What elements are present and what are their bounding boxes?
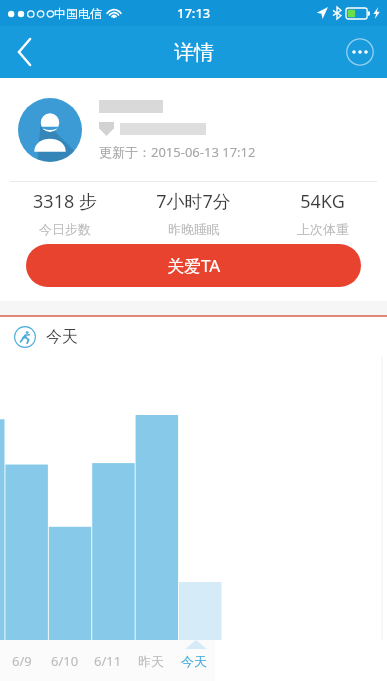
button[interactable]: 更新于：2015-06-13 17:12 [0, 78, 387, 181]
button[interactable]: 今天 [172, 640, 215, 681]
staticText: 上次体重 [297, 221, 349, 237]
staticText: 3318 步 [33, 189, 97, 214]
button[interactable]: 7小时7分 [129, 182, 258, 244]
button[interactable]: 昨天 [129, 640, 172, 681]
button[interactable]: 今天 [0, 317, 387, 357]
staticText: 更新于：2015-06-13 17:12 [99, 143, 256, 161]
staticText: 昨天 [138, 653, 164, 669]
staticText: 详情 [174, 40, 214, 65]
staticText: 关爱TA [167, 254, 221, 277]
staticText: 54KG [300, 189, 345, 214]
staticText: 6/9 [12, 652, 32, 670]
button[interactable]: 6/11 [86, 640, 129, 681]
button[interactable]: Back [0, 26, 50, 78]
staticText: 今天 [46, 327, 78, 347]
button[interactable]: 3318 步 [0, 182, 129, 244]
staticText: 7小时7分 [156, 189, 231, 214]
staticText: 中国电信 [54, 6, 102, 21]
staticText: 昨晚睡眠 [168, 221, 220, 237]
staticText: 6/10 [51, 652, 79, 670]
button[interactable]: 54KG [258, 182, 387, 244]
button[interactable]: 6/10 [43, 640, 86, 681]
button[interactable]: More options [333, 26, 387, 78]
staticText: 17:13 [177, 4, 211, 22]
staticText: 6/11 [94, 652, 122, 670]
staticText: 今日步数 [39, 221, 91, 237]
button[interactable]: 关爱TA [26, 244, 361, 287]
staticText: 今天 [181, 653, 207, 669]
button[interactable]: 6/9 [0, 640, 43, 681]
